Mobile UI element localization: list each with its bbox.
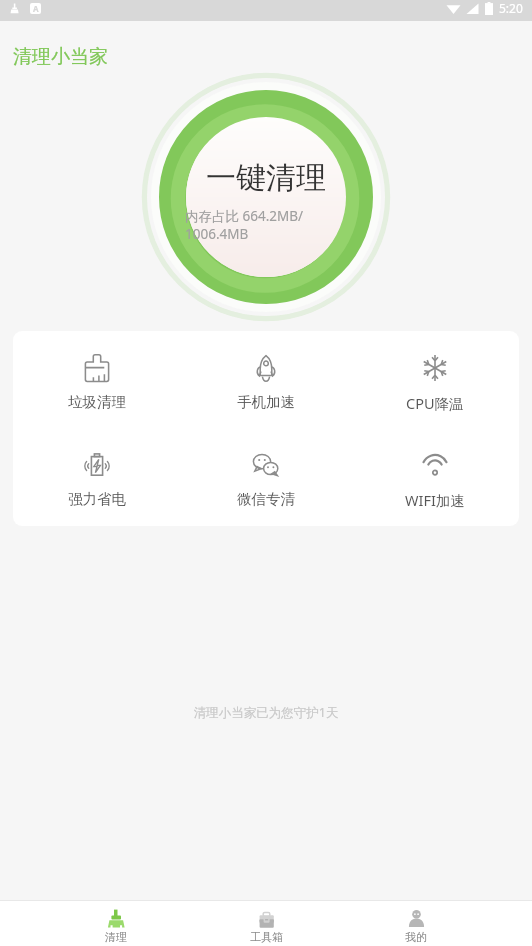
staticText: 微信专清 [237,490,295,508]
button[interactable]: WIFI加速 [350,428,519,525]
staticText: CPU降温 [406,393,464,413]
button[interactable]: CPU降温 [350,331,519,428]
staticText: 手机加速 [237,393,295,411]
button[interactable]: 工具箱 [191,904,341,944]
button[interactable]: 强力省电 [13,428,181,525]
staticText: 清理小当家已为您守护1天 [0,704,532,721]
staticText: A [33,3,39,14]
staticText: 5:20 [499,0,523,16]
button[interactable]: 一键清理 [136,67,396,327]
staticText: 工具箱 [250,930,283,944]
staticText: 强力省电 [68,490,126,508]
button[interactable]: 我的 [341,904,491,944]
staticText: 清理小当家 [13,45,108,69]
button[interactable]: 微信专清 [181,428,350,525]
staticText: 一键清理 [206,159,326,197]
staticText: 清理 [105,930,127,944]
staticText: 内存占比 664.2MB/1006.4MB [185,207,306,243]
staticText: 垃圾清理 [68,393,126,411]
button[interactable]: 手机加速 [181,331,350,428]
staticText: 我的 [405,930,427,944]
staticText: WIFI加速 [405,490,465,510]
button[interactable]: 清理 [41,904,191,944]
button[interactable]: 垃圾清理 [13,331,181,428]
